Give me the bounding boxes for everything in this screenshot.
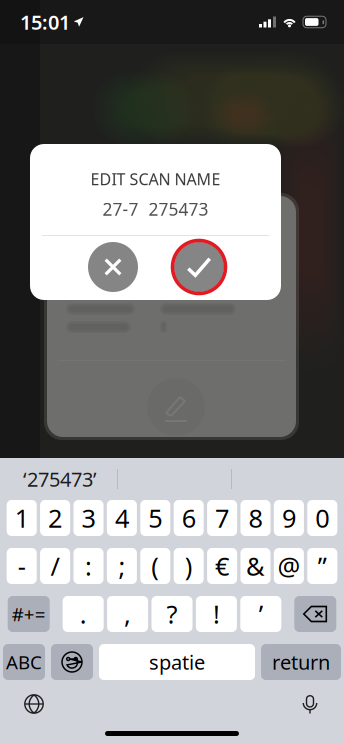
button[interactable]: ) (174, 548, 204, 584)
staticText: return (272, 649, 330, 675)
staticText: , (124, 597, 131, 631)
button[interactable]: , (107, 596, 148, 632)
staticText: : (85, 549, 92, 583)
button[interactable]: return (261, 644, 341, 680)
button[interactable]: Delete (294, 596, 336, 632)
button[interactable]: ( (140, 548, 170, 584)
staticText: 8 (248, 501, 262, 535)
button[interactable]: . (63, 596, 104, 632)
button[interactable]: Cancel (84, 238, 142, 296)
button[interactable]: ABC (3, 644, 45, 680)
button[interactable]: #+= (8, 596, 50, 632)
button[interactable]: 2 (40, 500, 70, 536)
staticText: 5 (148, 501, 162, 535)
staticText: ( (151, 549, 159, 583)
staticText: 1 (15, 501, 29, 535)
staticText: 15:01 (20, 9, 70, 35)
button[interactable]: 5 (140, 500, 170, 536)
button[interactable]: 8 (240, 500, 270, 536)
staticText: / (51, 549, 60, 583)
button[interactable]: Confirm (170, 238, 228, 296)
staticText: @ (277, 549, 300, 583)
staticText: 7 (215, 501, 229, 535)
button[interactable]: 1 (7, 500, 37, 536)
staticText: . (80, 597, 87, 631)
staticText: ” (318, 549, 327, 583)
button[interactable]: 6 (174, 500, 204, 536)
button[interactable]: - (7, 548, 37, 584)
button[interactable]: : (73, 548, 103, 584)
button[interactable]: ! (196, 596, 237, 632)
staticText: - (18, 549, 26, 583)
staticText: ? (166, 597, 177, 631)
button[interactable]: ” (307, 548, 337, 584)
staticText: 9 (282, 501, 296, 535)
staticText: 4 (115, 501, 129, 535)
staticText: 2 (48, 501, 62, 535)
button[interactable]: 0 (307, 500, 337, 536)
button[interactable]: / (40, 548, 70, 584)
staticText: spatie (149, 649, 205, 675)
button[interactable]: ’ (240, 596, 281, 632)
button[interactable]: spatie (99, 644, 255, 680)
staticText: & (246, 549, 265, 583)
button[interactable]: 7 (207, 500, 237, 536)
button[interactable]: @ (274, 548, 304, 584)
button[interactable]: Dictate (295, 689, 325, 719)
staticText: € (215, 549, 229, 583)
staticText: ) (185, 549, 193, 583)
staticText: ’ (259, 597, 263, 631)
staticText: #+= (12, 602, 46, 626)
staticText: ABC (6, 650, 42, 674)
staticText: EDIT SCAN NAME (90, 168, 220, 190)
button[interactable]: ; (107, 548, 137, 584)
staticText: 0 (315, 501, 329, 535)
button[interactable]: ? (151, 596, 192, 632)
staticText: 27-7 275473 (102, 197, 208, 220)
button[interactable]: 4 (107, 500, 137, 536)
button[interactable]: Emoji (51, 644, 93, 680)
button[interactable]: Change keyboard (19, 689, 49, 719)
staticText: ‘275473’ (23, 466, 97, 492)
staticText: ! (213, 597, 220, 631)
staticText: 6 (182, 501, 196, 535)
button[interactable]: & (240, 548, 270, 584)
staticText: 3 (81, 501, 95, 535)
button[interactable]: € (207, 548, 237, 584)
button[interactable]: 9 (274, 500, 304, 536)
button[interactable]: 3 (73, 500, 103, 536)
staticText: ; (118, 549, 125, 583)
